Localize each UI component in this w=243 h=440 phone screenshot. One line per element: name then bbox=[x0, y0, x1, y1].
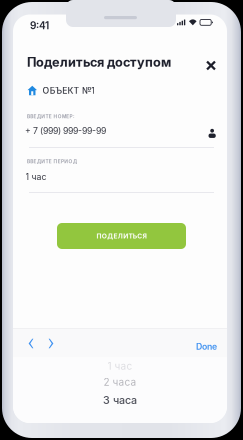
button[interactable]: Done bbox=[13, 328, 43, 350]
button[interactable]: ПОДЕЛИТЬСЯ bbox=[13, 14, 142, 40]
button[interactable]: Предыдущее поле bbox=[13, 328, 33, 350]
button[interactable]: Выбрать из контактов bbox=[13, 14, 31, 32]
staticText: Done bbox=[196, 341, 217, 352]
staticText: Поделиться доступом bbox=[27, 54, 171, 70]
staticText: 3 часа bbox=[103, 393, 137, 406]
button[interactable]: ВВЕДИТЕ ПЕРИОД bbox=[13, 14, 198, 50]
staticText: 1 час bbox=[25, 171, 46, 182]
button[interactable]: Закрыть bbox=[13, 14, 37, 38]
staticText: 2 часа bbox=[103, 376, 136, 388]
staticText: 9:41 bbox=[30, 19, 49, 32]
staticText: ВВЕДИТЕ ПЕРИОД bbox=[27, 158, 77, 164]
button[interactable]: ОБЪЕКТ №1 bbox=[13, 14, 163, 28]
button[interactable]: Следующее поле bbox=[13, 328, 33, 350]
staticText: ОБЪЕКТ №1 bbox=[42, 85, 95, 96]
staticText: ВВЕДИТЕ НОМЕР: bbox=[27, 113, 75, 119]
staticText: 1 час bbox=[107, 360, 132, 372]
staticText: ПОДЕЛИТЬСЯ bbox=[96, 232, 146, 240]
staticText: + 7 (999) 999-99-99 bbox=[25, 125, 106, 136]
